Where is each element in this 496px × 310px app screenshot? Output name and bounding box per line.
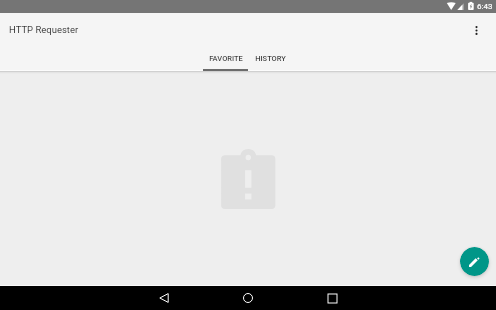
staticText: FAVORITE	[209, 54, 243, 63]
staticText: HISTORY	[255, 54, 286, 63]
button[interactable]: HISTORY	[248, 46, 293, 71]
staticText: HTTP Requester	[9, 24, 79, 35]
button[interactable]: FAVORITE	[203, 46, 248, 71]
staticText: 6:43	[477, 2, 493, 11]
button[interactable]: Back	[152, 286, 176, 310]
button[interactable]: Home	[236, 286, 260, 310]
button[interactable]: Create request	[460, 247, 489, 276]
button[interactable]: More options	[465, 19, 487, 41]
button[interactable]: Recents	[320, 286, 344, 310]
